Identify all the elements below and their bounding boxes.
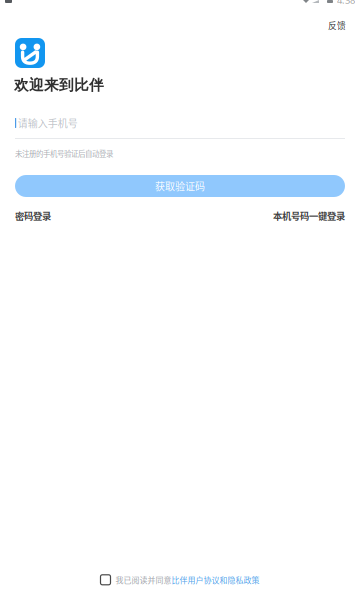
- button[interactable]: 比伴用户协议和隐私政策: [171, 574, 259, 586]
- staticText: 未注册的手机号验证后自动登录: [15, 148, 113, 159]
- button[interactable]: 本机号码一键登录: [273, 209, 345, 222]
- staticText: 请输入手机号: [18, 116, 78, 130]
- staticText: 我已阅读并同意: [115, 574, 171, 586]
- button[interactable]: Agree to the user agreement and privacy …: [100, 575, 110, 585]
- staticText: 反馈: [328, 19, 346, 31]
- button[interactable]: 密码登录: [15, 209, 51, 222]
- staticText: 4:38: [337, 0, 355, 6]
- button[interactable]: 获取验证码: [15, 175, 345, 197]
- staticText: 欢迎来到比伴: [14, 76, 104, 94]
- button[interactable]: 反馈: [323, 15, 360, 35]
- staticText: 密码登录: [15, 209, 51, 222]
- staticText: 比伴用户协议和隐私政策: [171, 574, 259, 586]
- staticText: 获取验证码: [155, 179, 205, 193]
- staticText: 本机号码一键登录: [273, 209, 345, 222]
